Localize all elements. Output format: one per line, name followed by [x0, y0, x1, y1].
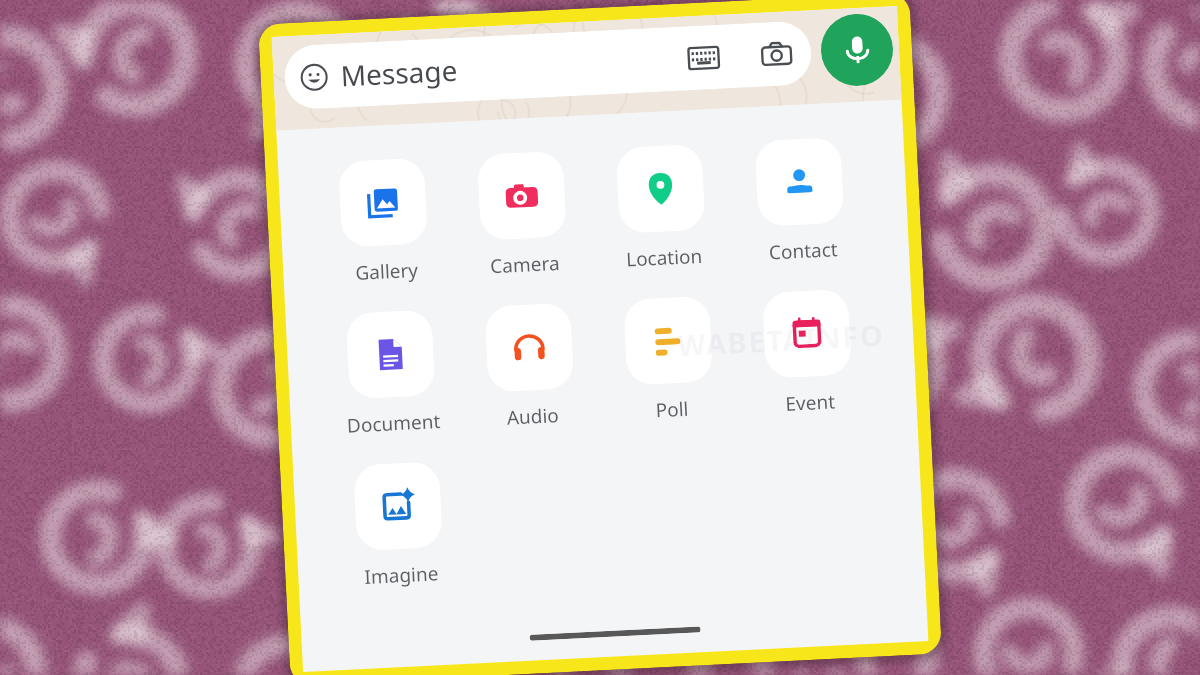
button[interactable]: Camera — [460, 150, 586, 281]
staticText: Poll — [655, 396, 689, 423]
staticText: Message — [340, 51, 458, 95]
staticText: Camera — [490, 250, 561, 279]
staticText: Event — [785, 388, 836, 417]
staticText: WABETAINFO — [676, 315, 885, 364]
staticText: Contact — [768, 236, 838, 265]
button[interactable]: Record voice message — [819, 12, 895, 88]
staticText: Document — [346, 408, 441, 439]
button[interactable]: Location — [599, 143, 725, 274]
button[interactable]: Gallery — [321, 157, 447, 287]
button[interactable]: Keyboard — [687, 42, 720, 74]
button[interactable]: Contact — [737, 136, 863, 267]
button[interactable]: Camera — [760, 38, 793, 71]
staticText: Audio — [506, 402, 559, 431]
staticText: Gallery — [355, 257, 419, 286]
staticText: Imagine — [364, 560, 439, 590]
button[interactable]: Event — [745, 288, 871, 419]
button[interactable]: Document — [328, 308, 454, 439]
button[interactable]: Audio — [467, 302, 593, 432]
button[interactable]: Poll — [606, 295, 732, 425]
button[interactable]: Message — [283, 20, 813, 110]
staticText: Location — [625, 243, 704, 273]
button[interactable]: Imagine — [336, 460, 462, 591]
